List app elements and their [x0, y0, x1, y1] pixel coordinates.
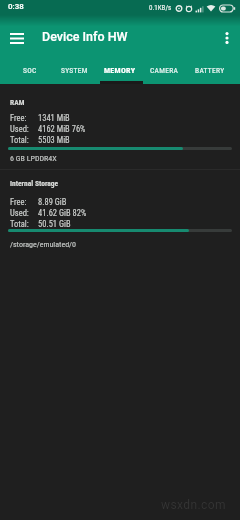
button[interactable]: MEMORY	[97, 56, 142, 84]
staticText: wsxdn.com	[161, 498, 226, 512]
button[interactable]	[2, 24, 32, 52]
staticText: 41.62 GiB 82%	[38, 208, 87, 218]
staticText: /storage/emulated/0	[10, 240, 77, 249]
button[interactable]: BATTERY	[187, 56, 232, 84]
staticText: 6 GB LPDDR4X	[10, 154, 57, 163]
staticText: 8.89 GiB	[38, 197, 67, 207]
button[interactable]: SYSTEM	[52, 56, 97, 84]
staticText: 0.1KB/s	[149, 4, 172, 12]
staticText: SOC	[23, 66, 37, 75]
staticText: 0:38	[8, 2, 24, 11]
staticText: 50.51 GiB	[38, 219, 71, 229]
staticText: MEMORY	[104, 66, 136, 75]
staticText: 4162 MiB 76%	[38, 124, 86, 134]
staticText: 5503 MiB	[38, 135, 70, 145]
staticText: 1341 MiB	[38, 113, 70, 123]
button[interactable]	[216, 24, 238, 52]
staticText: Used:	[10, 124, 29, 134]
staticText: RAM	[10, 98, 25, 107]
button[interactable]: SOC	[7, 56, 52, 84]
staticText: Free:	[10, 113, 27, 123]
staticText: Free:	[10, 197, 27, 207]
staticText: BATTERY	[195, 66, 225, 75]
staticText: Total:	[10, 219, 29, 229]
staticText: SYSTEM	[61, 66, 88, 75]
staticText: CAMERA	[150, 66, 179, 75]
staticText: Total:	[10, 135, 29, 145]
staticText: Used:	[10, 208, 29, 218]
staticText: Device Info HW	[42, 29, 128, 44]
staticText: Internal Storage	[10, 179, 59, 188]
button[interactable]: CAMERA	[142, 56, 187, 84]
